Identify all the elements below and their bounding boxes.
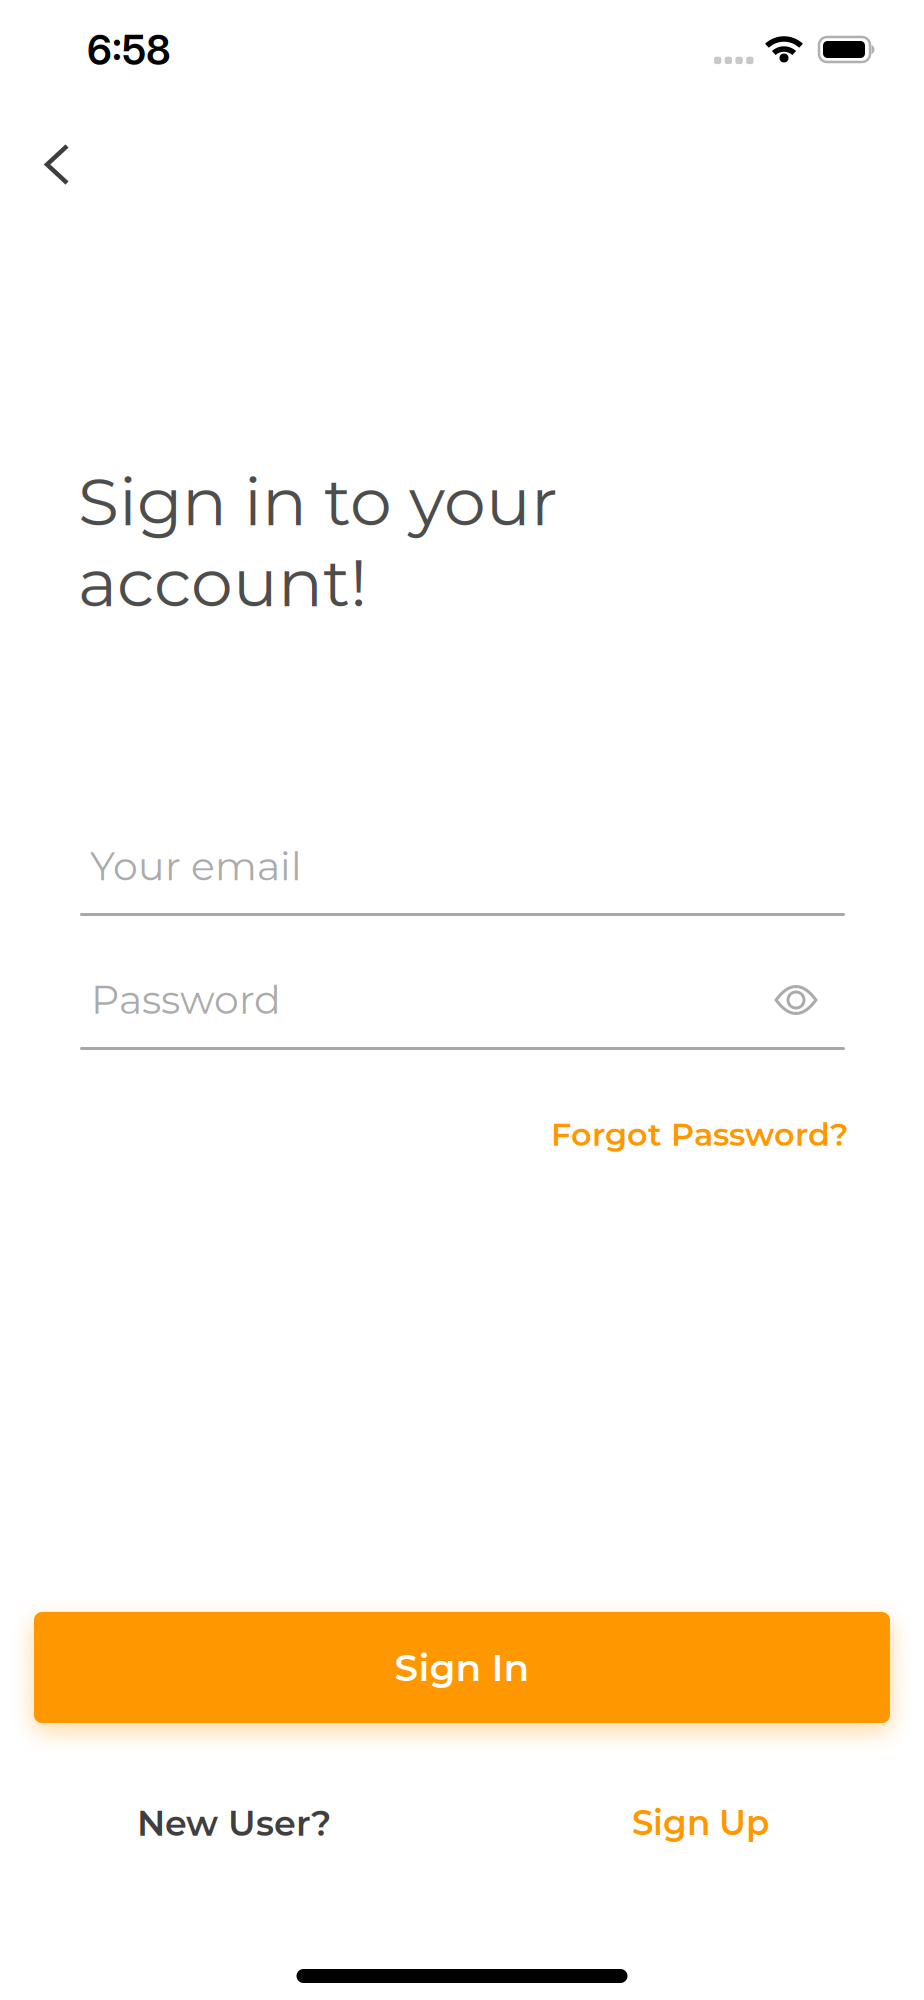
- button[interactable]: Forgot Password?: [551, 1115, 849, 1154]
- staticText: Sign Up: [632, 1802, 769, 1844]
- staticText: Sign In: [394, 1645, 529, 1690]
- button[interactable]: Show password: [766, 976, 826, 1023]
- button[interactable]: Sign Up: [612, 1788, 789, 1858]
- button[interactable]: New User?: [117, 1788, 351, 1859]
- staticText: New User?: [137, 1802, 331, 1845]
- staticText: Forgot Password?: [551, 1115, 849, 1154]
- button[interactable]: Back: [0, 134, 97, 195]
- staticText: Sign in to your account!: [78, 461, 558, 623]
- staticText: Your email: [90, 842, 302, 890]
- button[interactable]: Sign In: [34, 1612, 890, 1723]
- staticText: Password: [91, 975, 281, 1024]
- staticText: 6:58: [87, 26, 171, 74]
